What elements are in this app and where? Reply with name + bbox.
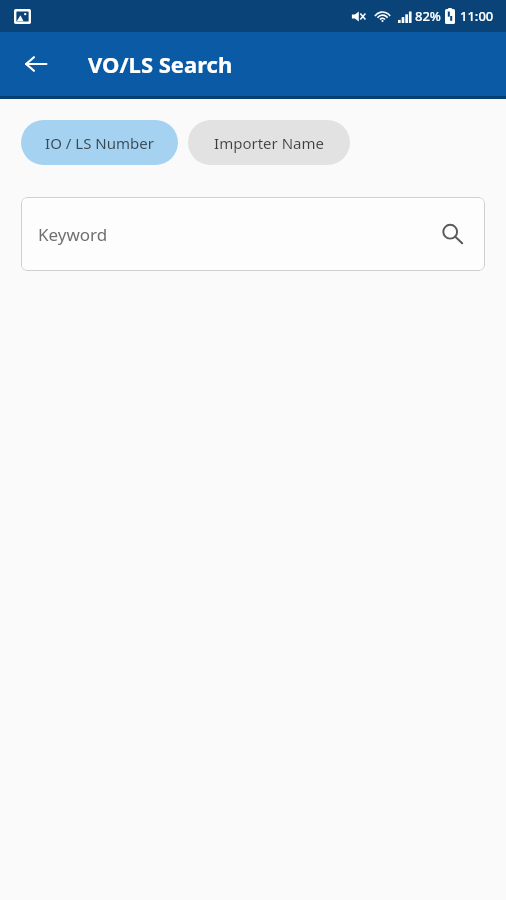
button[interactable]: IO / LS Number bbox=[21, 120, 178, 165]
button[interactable]: Back bbox=[12, 40, 60, 88]
staticText: Importer Name bbox=[214, 133, 324, 153]
staticText: 82% bbox=[415, 7, 441, 25]
staticText: VO/LS Search bbox=[88, 49, 233, 79]
button[interactable]: Keyword bbox=[21, 197, 485, 271]
staticText: 11:00 bbox=[460, 7, 494, 25]
staticText: IO / LS Number bbox=[45, 133, 154, 153]
button[interactable]: Importer Name bbox=[188, 120, 350, 165]
button[interactable]: Search bbox=[435, 217, 469, 251]
staticText: Keyword bbox=[38, 223, 108, 246]
